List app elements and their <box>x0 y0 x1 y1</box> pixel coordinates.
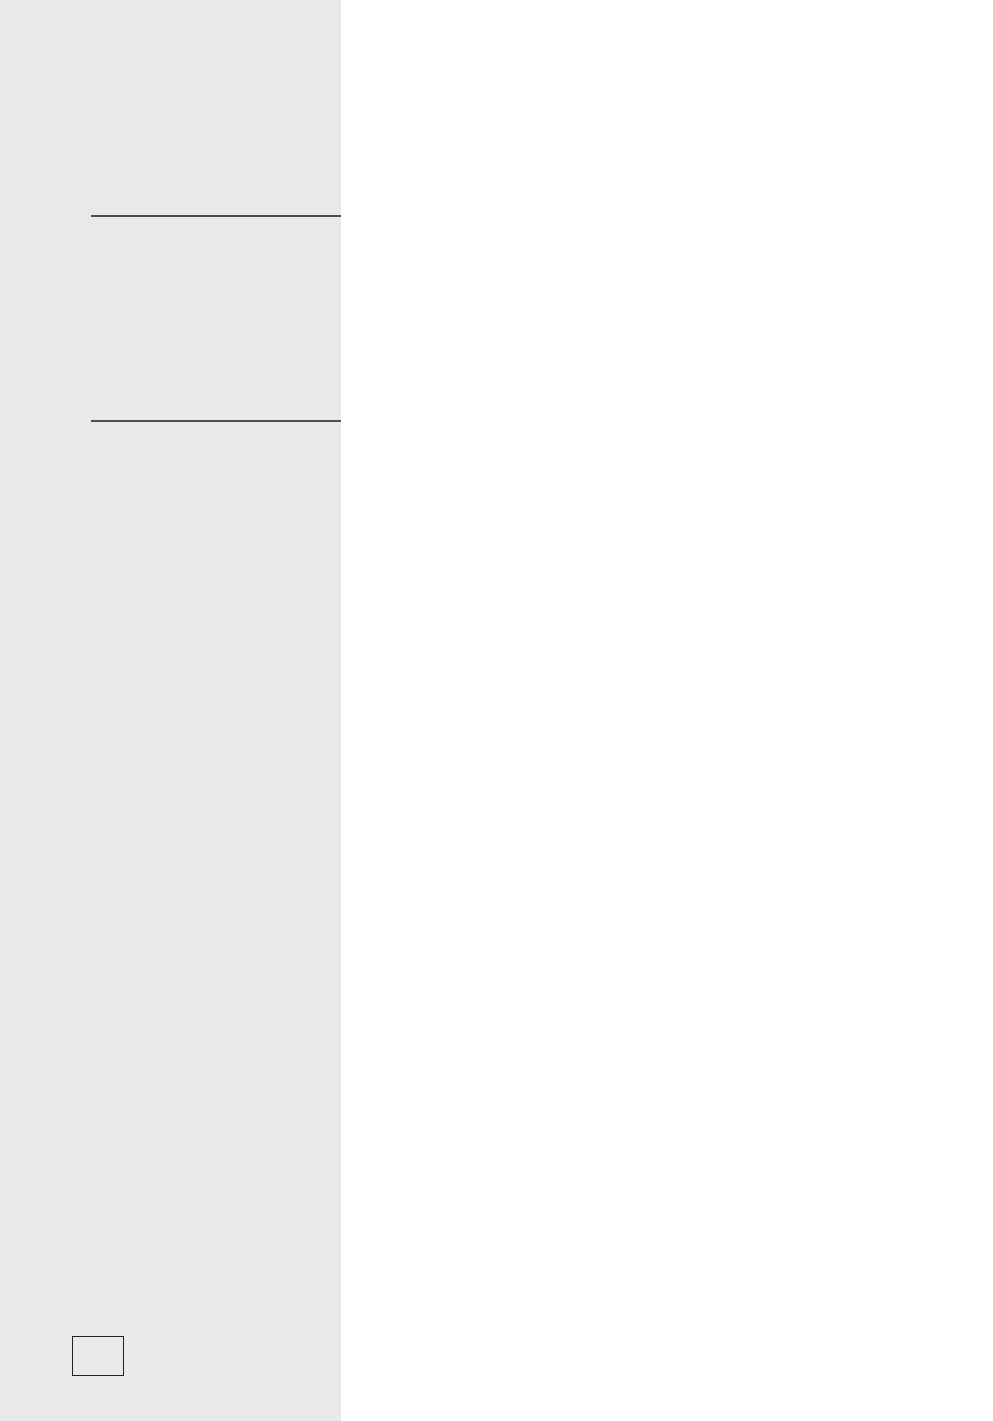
button[interactable]: Open <box>72 1336 124 1376</box>
